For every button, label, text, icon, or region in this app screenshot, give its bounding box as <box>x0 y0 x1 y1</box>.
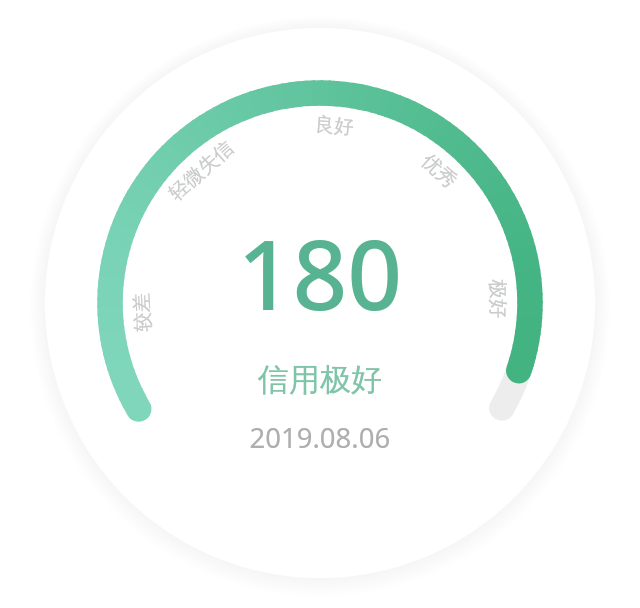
button[interactable]: Credit score 180, 信用极好, 2019.08.06 <box>0 0 640 608</box>
